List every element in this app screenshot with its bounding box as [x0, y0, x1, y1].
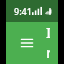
staticText: Inbox	[46, 22, 50, 64]
button[interactable]: Open navigation menu	[14, 30, 40, 56]
staticText: 9:41	[14, 5, 32, 17]
